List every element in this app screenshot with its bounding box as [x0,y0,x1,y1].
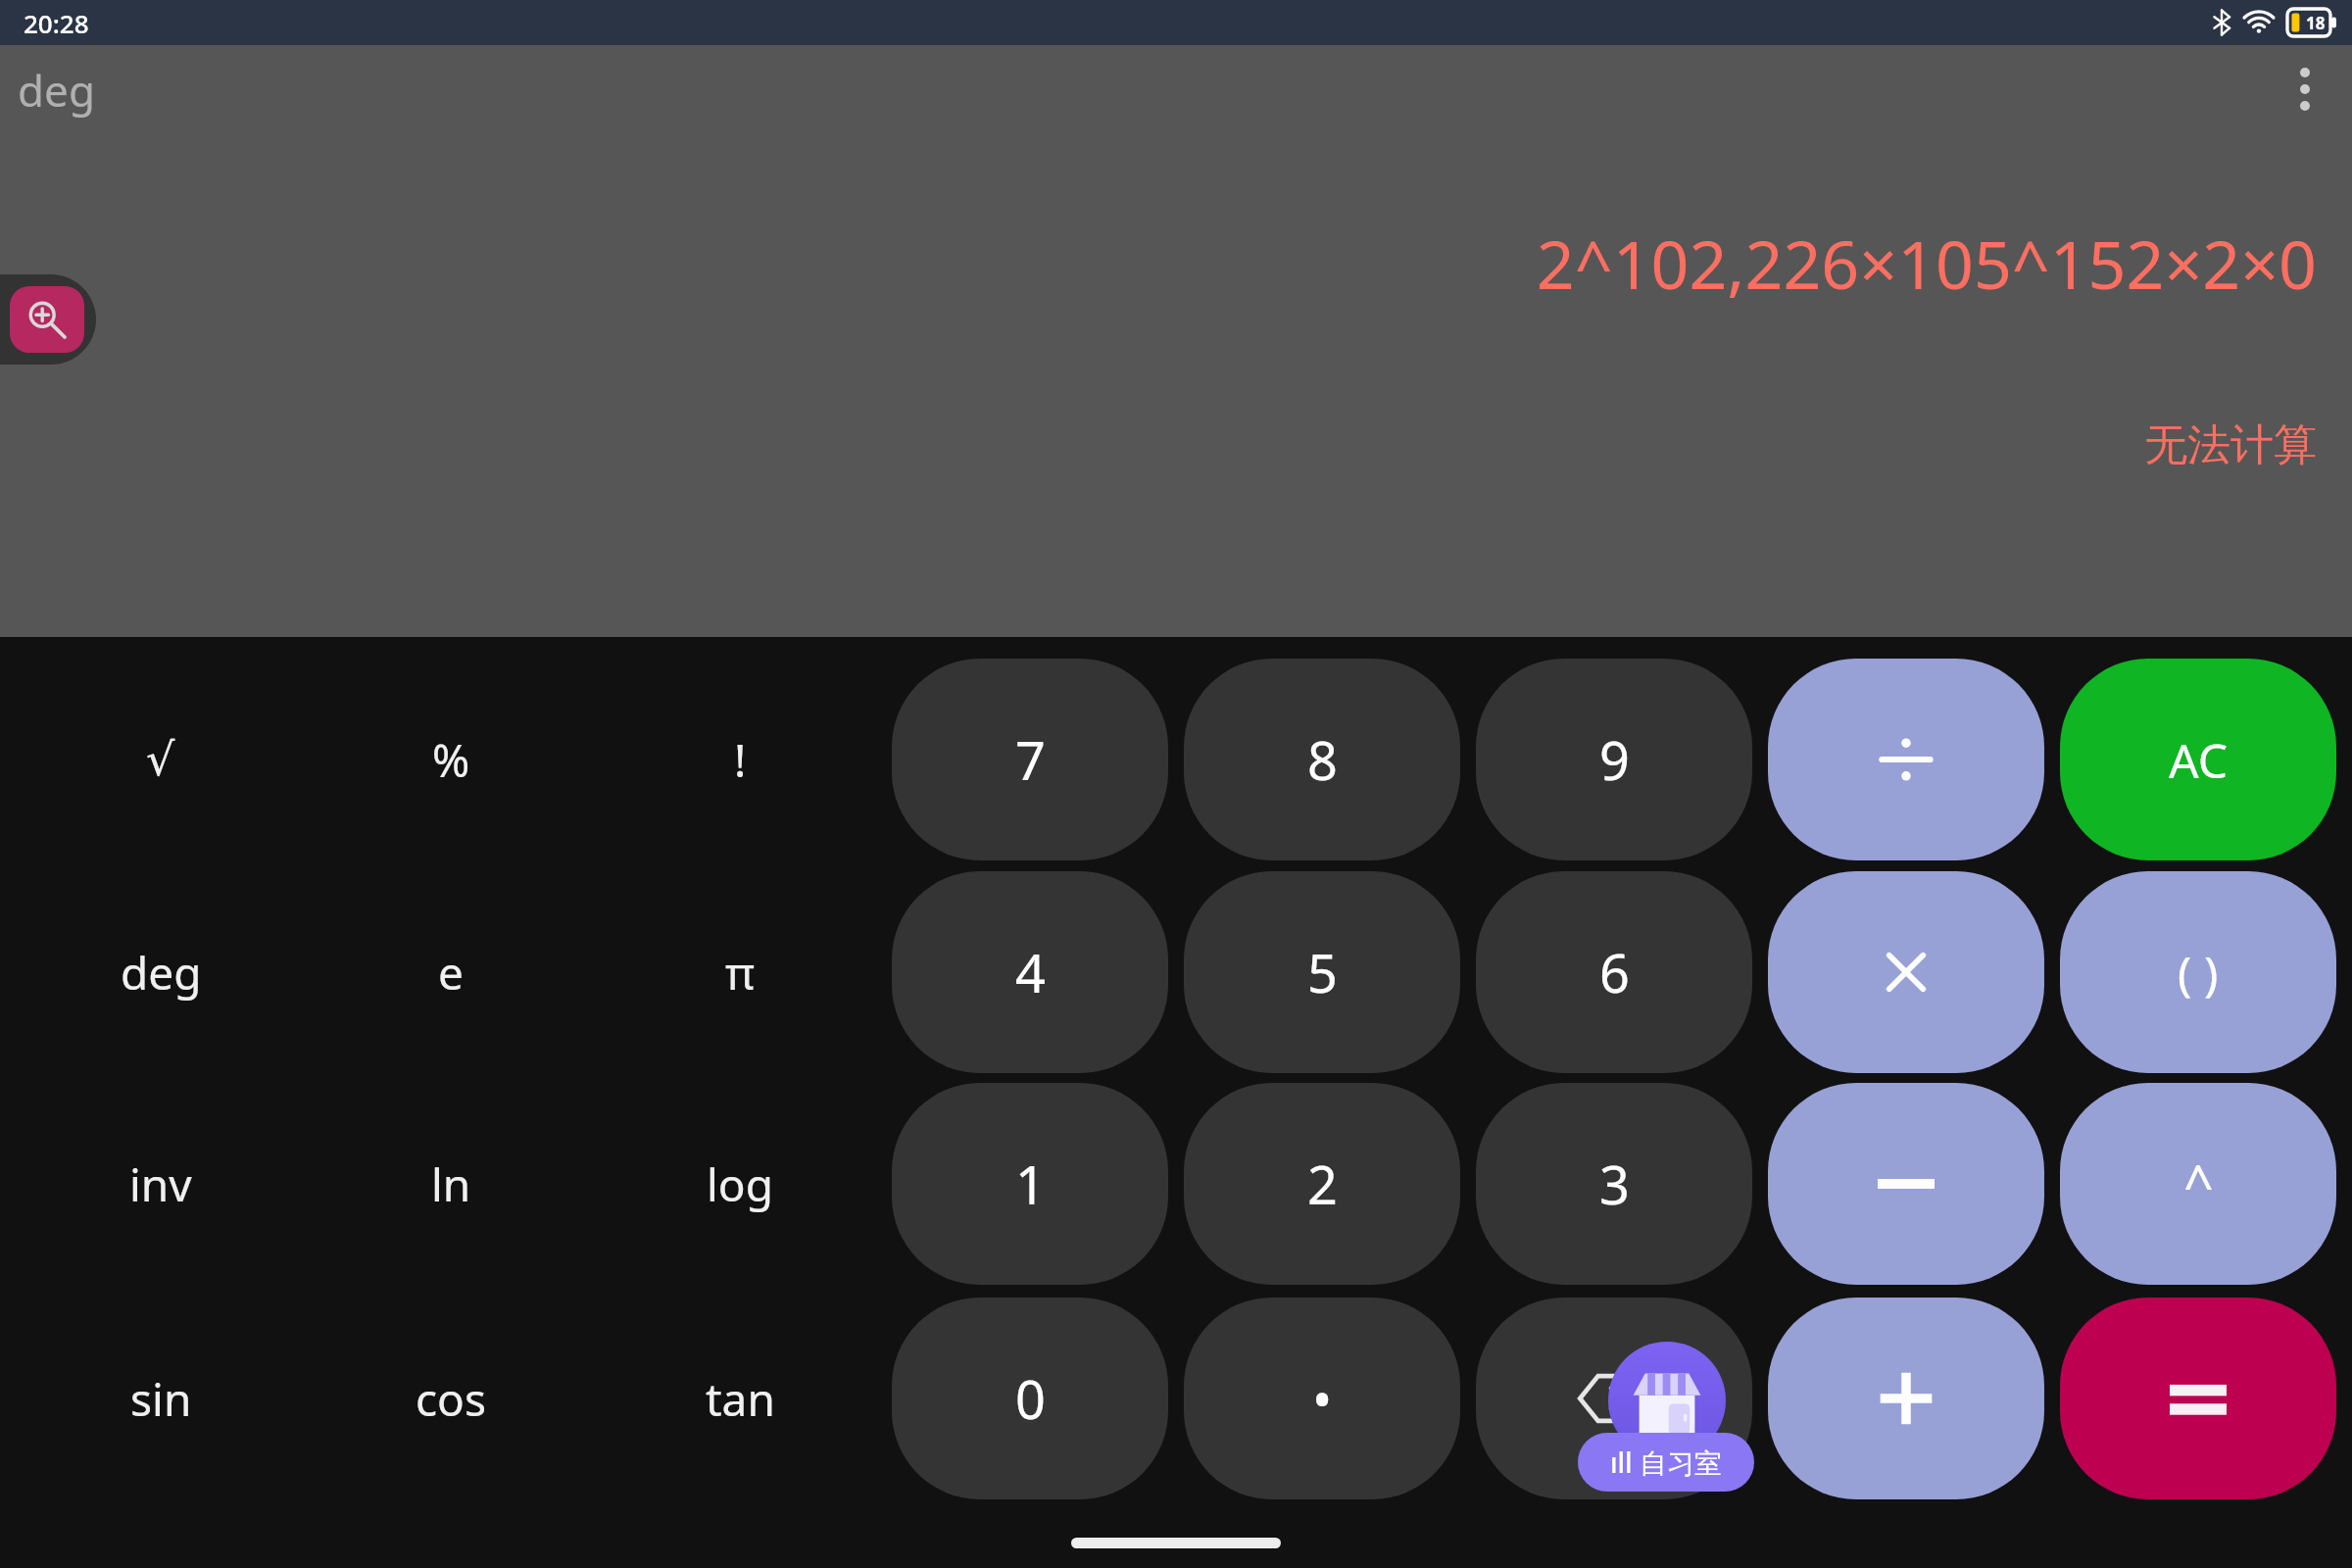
staticText: 4 [1015,936,1046,1008]
staticText: 18 [2306,12,2326,34]
button[interactable]: Study room [1608,1342,1726,1459]
button[interactable]: Multiply [1768,871,2044,1073]
staticText: ln [431,1153,471,1215]
staticText: 3 [1599,1148,1630,1220]
button[interactable]: • [1184,1298,1460,1499]
staticText: % [432,729,470,791]
staticText: deg [121,942,202,1004]
button[interactable]: Subtract [1768,1083,2044,1285]
button[interactable]: 4 [892,871,1168,1073]
staticText: e [438,942,464,1004]
button[interactable]: Divide [1768,659,2044,860]
staticText: AC [2169,728,2229,792]
staticText: 5 [1307,936,1338,1008]
staticText: ( ) [2178,941,2219,1004]
staticText: 7 [1015,723,1046,796]
button[interactable]: Zoom in [10,286,84,353]
button[interactable]: Backspace [1476,1298,1752,1499]
button[interactable]: 0 [892,1298,1168,1499]
button[interactable]: 5 [1184,871,1460,1073]
staticText: ıll 自习室 [1610,1444,1722,1481]
button[interactable]: AC [2060,659,2336,860]
staticText: ^ [2183,1148,2214,1220]
staticText: inv [129,1153,192,1215]
button[interactable]: e [338,894,563,1051]
staticText: 8 [1307,723,1338,796]
staticText: 9 [1599,723,1630,796]
button[interactable]: 2 [1184,1083,1460,1285]
button[interactable]: 1 [892,1083,1168,1285]
button[interactable]: 6 [1476,871,1752,1073]
button[interactable]: 3 [1476,1083,1752,1285]
button[interactable]: More options [2276,55,2334,123]
button[interactable]: 7 [892,659,1168,860]
button[interactable]: ! [627,681,853,838]
button[interactable]: Add [1768,1298,2044,1499]
button[interactable]: log [627,1105,853,1262]
button[interactable]: ıll 自习室 [1578,1433,1754,1492]
staticText: π [725,942,756,1004]
staticText: 2 [1307,1148,1338,1220]
staticText: deg [18,61,95,120]
staticText: √ [146,733,175,786]
staticText: 0 [1015,1362,1046,1435]
button[interactable]: cos [338,1320,563,1477]
staticText: 2^102,226×105^152×2×0 [1536,218,2317,309]
staticText: sin [130,1368,192,1430]
staticText: • [1312,1362,1333,1435]
button[interactable]: 9 [1476,659,1752,860]
button[interactable]: Equals [2060,1298,2336,1499]
button[interactable]: 8 [1184,659,1460,860]
button[interactable]: √ [48,681,273,838]
staticText: 无法计算 [2144,418,2317,472]
staticText: 20:28 [24,6,89,40]
button[interactable]: ln [338,1105,563,1262]
button[interactable]: tan [627,1320,853,1477]
staticText: log [707,1153,773,1215]
button[interactable]: inv [48,1105,273,1262]
button[interactable]: deg [48,894,273,1051]
staticText: ! [734,729,747,791]
staticText: tan [706,1368,775,1430]
button[interactable]: ^ [2060,1083,2336,1285]
staticText: 6 [1599,936,1630,1008]
button[interactable]: π [627,894,853,1051]
button[interactable]: ( ) [2060,871,2336,1073]
button[interactable]: sin [48,1320,273,1477]
staticText: 1 [1015,1148,1046,1220]
button[interactable]: % [338,681,563,838]
staticText: cos [416,1368,486,1430]
